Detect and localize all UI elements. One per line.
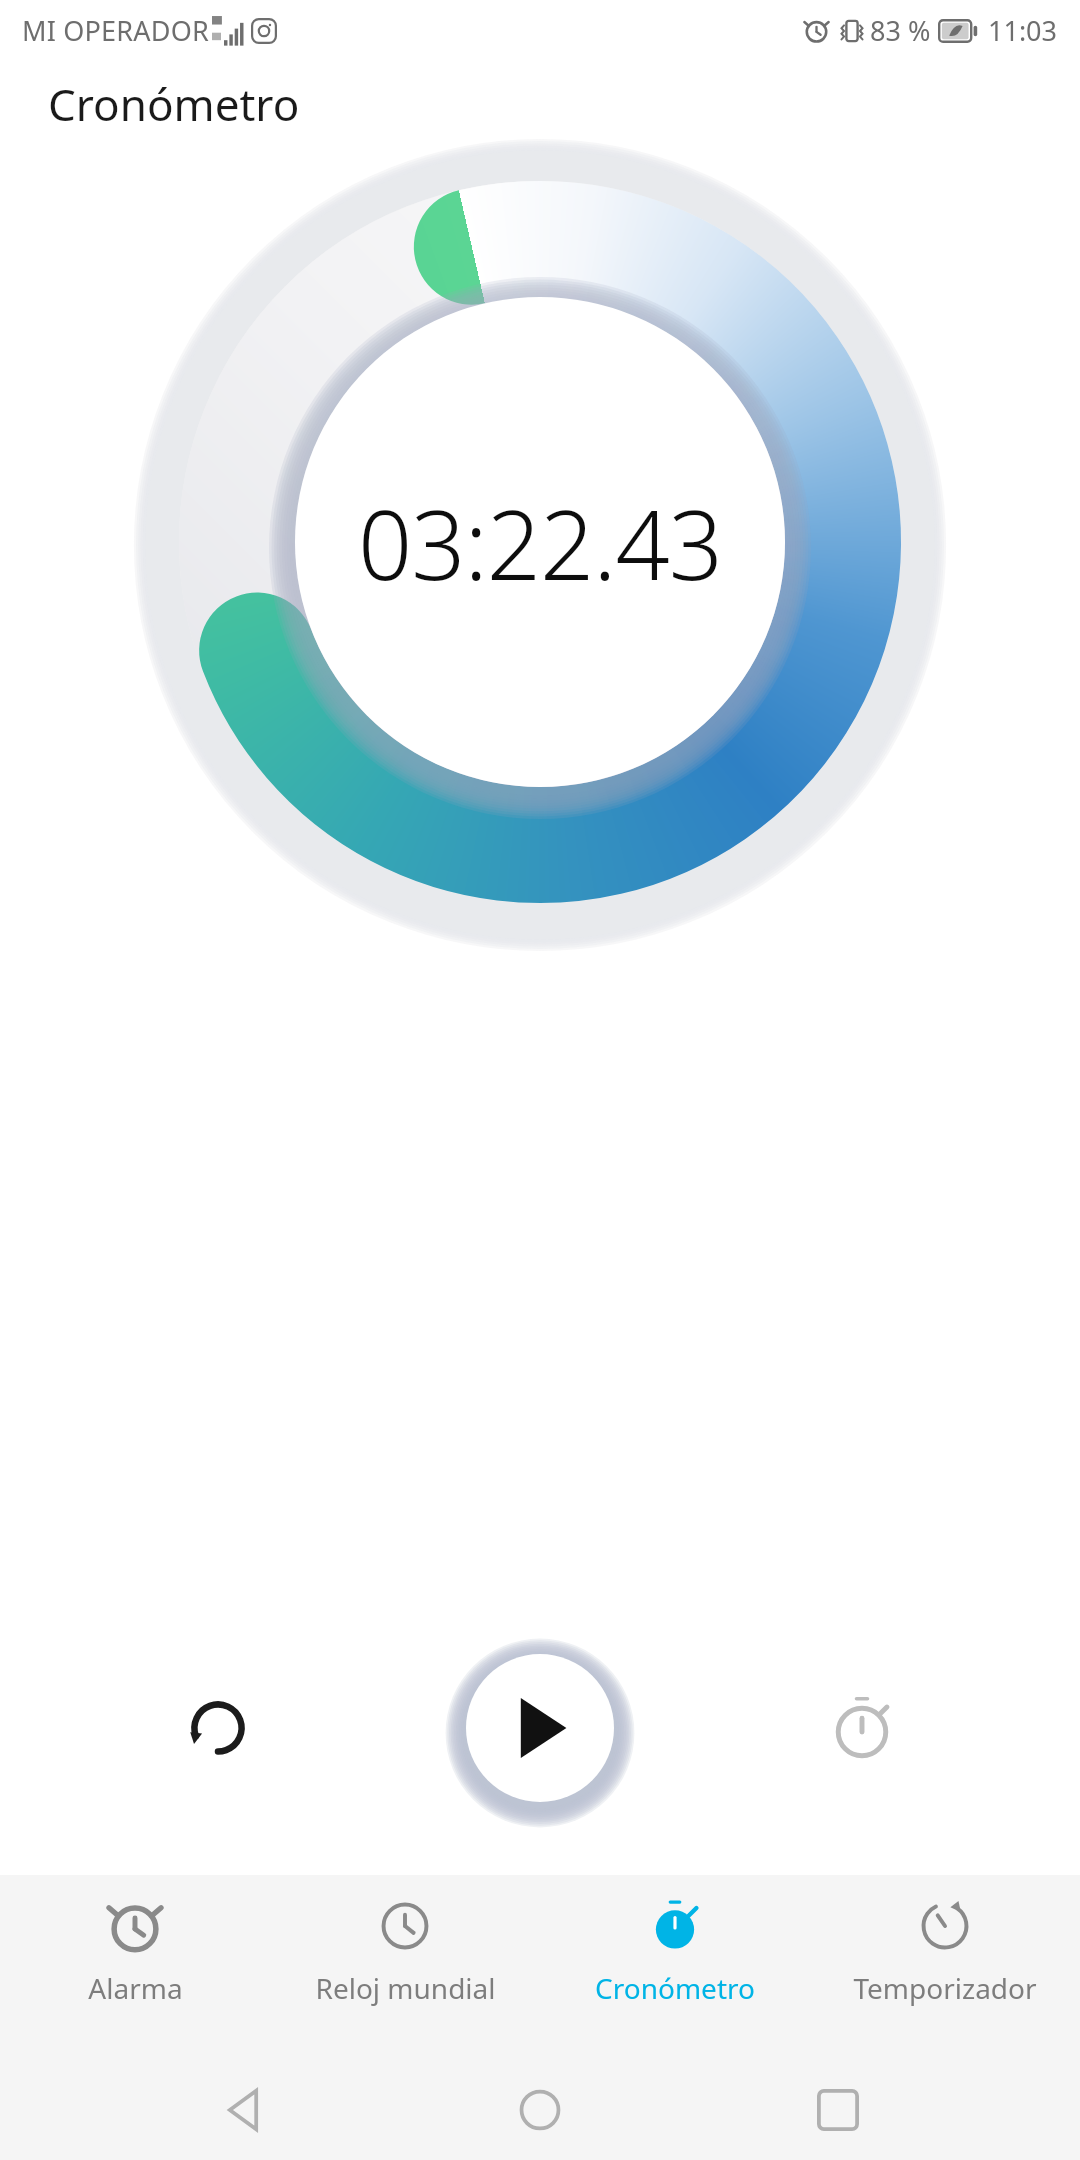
button[interactable]: Restablecer [152, 1662, 284, 1794]
staticText: Cronómetro [595, 1969, 755, 2007]
staticText: Temporizador [853, 1969, 1037, 2007]
button[interactable]: Inicio [485, 2060, 595, 2160]
button[interactable]: Atrás [188, 2060, 298, 2160]
staticText: Cronómetro [48, 74, 300, 134]
button[interactable]: Cronómetro [540, 1875, 810, 2060]
staticText: 11:03 [988, 12, 1058, 49]
button[interactable]: Recientes [783, 2060, 893, 2160]
button[interactable]: Reloj mundial [270, 1875, 540, 2060]
button[interactable]: Iniciar [465, 1653, 615, 1803]
button[interactable]: Vuelta [796, 1662, 928, 1794]
button[interactable]: Temporizador [810, 1875, 1080, 2060]
staticText: 83 % [870, 12, 931, 49]
staticText: Reloj mundial [315, 1969, 496, 2007]
button[interactable]: Alarma [0, 1875, 270, 2060]
staticText: Alarma [88, 1969, 183, 2007]
staticText: 03:22.43 [358, 478, 722, 607]
staticText: MI OPERADOR [22, 12, 209, 49]
